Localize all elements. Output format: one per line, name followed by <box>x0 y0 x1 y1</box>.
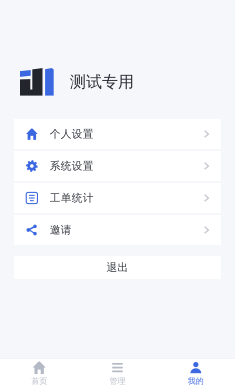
staticText: 测试专用 <box>70 72 134 92</box>
staticText: 退出 <box>106 261 128 274</box>
staticText: 邀请 <box>50 223 72 236</box>
button[interactable]: 邀请 <box>14 215 221 245</box>
staticText: 我的 <box>188 376 204 386</box>
staticText: 首页 <box>31 376 47 386</box>
button[interactable]: 退出 <box>14 256 221 279</box>
staticText: 个人设置 <box>50 127 94 140</box>
button[interactable]: 首页 <box>0 356 78 390</box>
staticText: 管理 <box>109 376 125 386</box>
staticText: 工单统计 <box>50 191 94 204</box>
button[interactable]: 工单统计 <box>14 183 221 213</box>
button[interactable]: 个人设置 <box>14 119 221 149</box>
button[interactable]: 我的 <box>157 356 235 390</box>
button[interactable]: 管理 <box>78 356 157 390</box>
button[interactable]: 系统设置 <box>14 151 221 181</box>
staticText: 系统设置 <box>50 159 94 172</box>
